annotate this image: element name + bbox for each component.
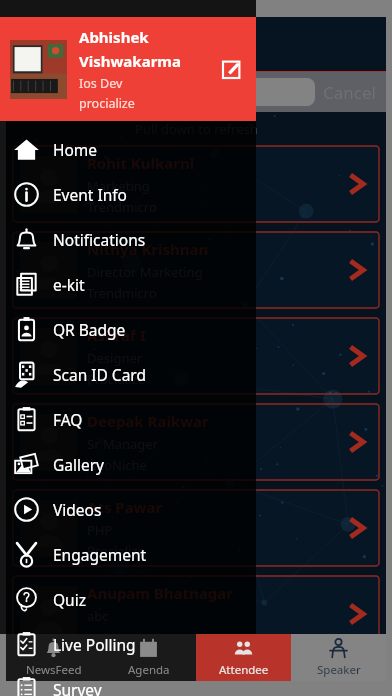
staticText: Scan ID Card <box>53 364 146 385</box>
button[interactable]: Ashraf I <box>13 318 379 394</box>
staticText: Attendee <box>219 662 269 678</box>
staticText: NeoNiche <box>87 456 147 474</box>
button[interactable]: Speaker <box>291 634 386 681</box>
staticText: QR Badge <box>53 319 126 340</box>
staticText: Speaker <box>317 662 361 678</box>
staticText: Notifications <box>53 229 146 250</box>
staticText: Survey <box>53 679 102 696</box>
button[interactable]: Anupam Bhatnagar <box>13 576 379 652</box>
staticText: Designer <box>87 349 143 367</box>
button[interactable]: QR Badge <box>0 307 256 352</box>
staticText: Sr Manager <box>87 435 158 453</box>
button[interactable]: FAQ <box>0 397 256 442</box>
button[interactable]: Deepak Raikwar <box>13 404 379 480</box>
staticText: xyz <box>87 628 107 646</box>
button[interactable] <box>14 78 315 106</box>
staticText: Quiz <box>53 589 86 610</box>
button[interactable]: Home <box>0 127 256 172</box>
staticText: Home <box>53 139 98 160</box>
staticText: Live Polling <box>53 634 136 655</box>
staticText: Procialize <box>87 542 145 560</box>
staticText: Videos <box>53 499 102 520</box>
staticText: Ios Dev <box>79 75 123 92</box>
staticText: Agenda <box>128 662 170 678</box>
staticText: Director Marketing <box>87 263 203 281</box>
staticText: Procialize <box>87 370 145 388</box>
button[interactable]: Scan ID Card <box>0 352 256 397</box>
staticText: Pull down to refresh <box>135 120 258 138</box>
button[interactable]: Survey <box>0 667 256 696</box>
staticText: Vishwakarma <box>79 51 181 71</box>
staticText: Marketing <box>87 177 150 195</box>
button[interactable]: Edit profile <box>216 53 248 85</box>
button[interactable]: Notifications <box>0 217 256 262</box>
button[interactable]: Event Info <box>0 172 256 217</box>
button[interactable]: Rohit Kulkarni <box>13 146 379 222</box>
staticText: Gallery <box>53 454 105 475</box>
staticText: Engagement <box>53 544 147 565</box>
button[interactable]: Engagement <box>0 532 256 577</box>
staticText: Ashraf I <box>87 325 146 345</box>
button[interactable]: Nithya Krishnan <box>13 232 379 308</box>
button[interactable]: Agenda <box>101 634 196 681</box>
staticText: FAQ <box>53 409 83 430</box>
staticText: Trendmicro <box>87 284 157 302</box>
button[interactable]: Videos <box>0 487 256 532</box>
staticText: Rohit Kulkarni <box>87 153 195 173</box>
staticText: Cancel <box>323 81 376 104</box>
staticText: procialize <box>79 95 135 112</box>
button[interactable]: Cancel <box>323 81 376 104</box>
staticText: Abhishek <box>79 27 149 47</box>
button[interactable]: Quiz <box>0 577 256 622</box>
staticText: Nithya Krishnan <box>87 239 209 259</box>
staticText: Ats Pawar <box>87 497 163 517</box>
staticText: NewsFeed <box>26 662 82 678</box>
staticText: PHP <box>87 521 113 539</box>
button[interactable]: NewsFeed <box>6 634 101 681</box>
staticText: abc <box>87 607 109 625</box>
button[interactable]: Gallery <box>0 442 256 487</box>
staticText: Trendmicro <box>87 198 157 216</box>
button[interactable]: Live Polling <box>0 622 256 667</box>
button[interactable]: Abhishek <box>0 17 256 121</box>
staticText: Anupam Bhatnagar <box>87 583 233 603</box>
button[interactable]: Attendee <box>196 634 291 681</box>
staticText: Event Info <box>53 184 127 205</box>
staticText: Deepak Raikwar <box>87 411 209 431</box>
button[interactable]: Ats Pawar <box>13 490 379 566</box>
button[interactable]: e-kit <box>0 262 256 307</box>
staticText: e-kit <box>53 274 85 295</box>
